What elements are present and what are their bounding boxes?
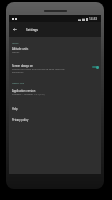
staticText: Altitude units	[12, 47, 29, 51]
staticText: ABOUT APP	[12, 82, 25, 85]
button[interactable]	[9, 45, 101, 56]
staticText: Compass – Altimeter 1.4.1 (141)	[12, 93, 45, 96]
staticText: Settings	[26, 28, 39, 32]
button[interactable]	[9, 102, 101, 113]
staticText: Screen always on	[12, 64, 33, 68]
button[interactable]	[9, 86, 101, 98]
button[interactable]	[9, 114, 101, 125]
button[interactable]: Back	[10, 24, 19, 35]
staticText: metres	[12, 51, 20, 54]
button[interactable]: Toggle screen always on	[92, 64, 99, 70]
staticText: Prevent the screen from turning off whil…	[12, 68, 65, 71]
staticText: 14:33	[89, 17, 98, 21]
button[interactable]	[9, 56, 101, 74]
staticText: Privacy policy	[12, 118, 29, 122]
staticText: application	[12, 71, 24, 74]
staticText: Help	[12, 107, 18, 111]
staticText: UNITS	[12, 42, 19, 45]
staticText: Application version	[12, 89, 36, 93]
